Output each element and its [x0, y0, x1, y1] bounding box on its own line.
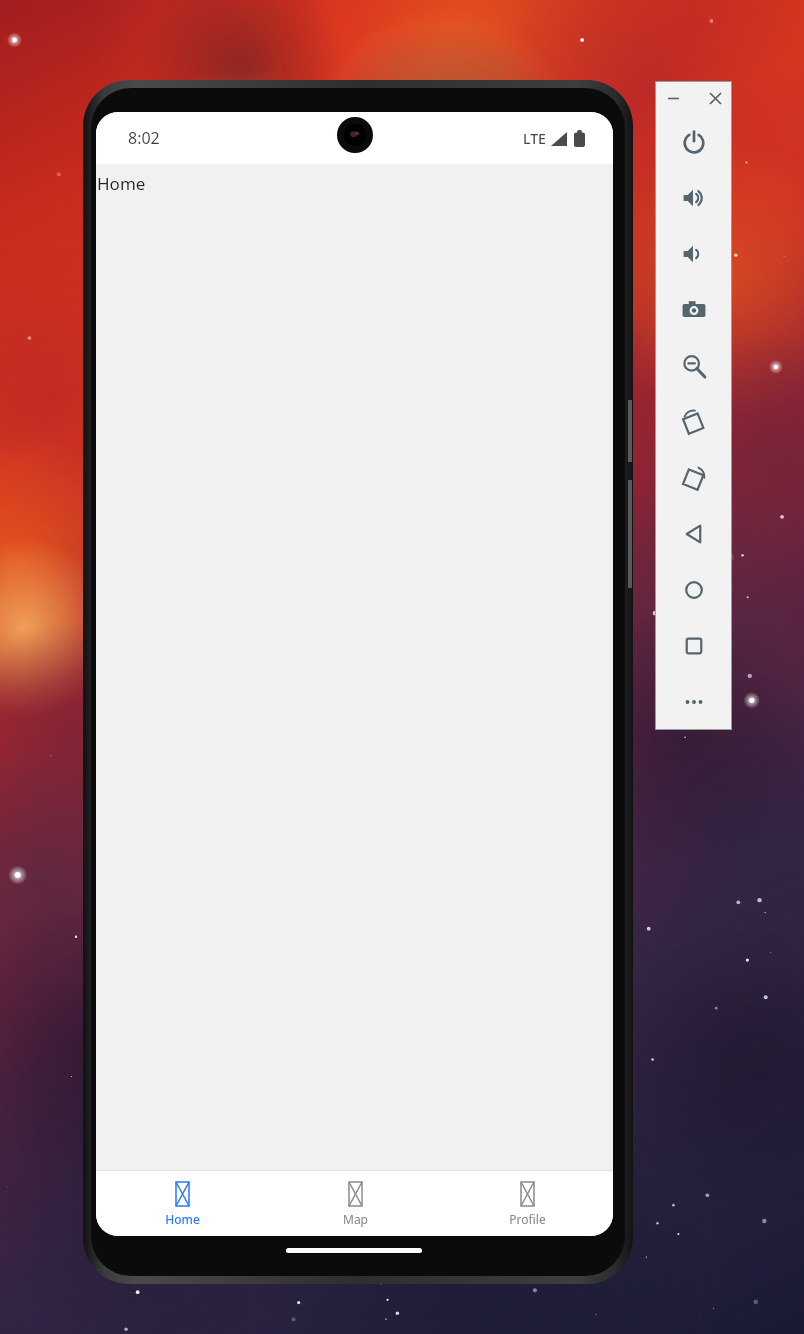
button[interactable]: More	[666, 674, 722, 729]
other: Profile	[521, 1182, 534, 1206]
button[interactable]: Rotate right	[666, 450, 722, 506]
button[interactable]: Profile	[441, 1171, 613, 1236]
button[interactable]: Zoom	[666, 338, 722, 394]
staticText: Home	[165, 1211, 200, 1227]
button[interactable]: Map	[269, 1171, 441, 1236]
button[interactable]: Rotate left	[666, 394, 722, 450]
button[interactable]: Minimize	[662, 87, 684, 109]
button[interactable]: Back	[666, 506, 722, 562]
staticText: LTE	[523, 129, 546, 148]
button[interactable]: Power	[666, 114, 722, 170]
other: Map	[349, 1182, 362, 1206]
button[interactable]: Home	[666, 562, 722, 618]
staticText: 8:02	[128, 127, 160, 149]
button[interactable]: Close	[704, 87, 726, 109]
button[interactable]: Volume up	[666, 170, 722, 226]
button[interactable]: Overview	[666, 618, 722, 674]
staticText: Home	[97, 172, 146, 195]
button[interactable]: Take screenshot	[666, 282, 722, 338]
other: Home	[176, 1182, 189, 1206]
staticText: Map	[343, 1211, 368, 1227]
staticText: Profile	[509, 1211, 546, 1227]
button[interactable]: Volume down	[666, 226, 722, 282]
button[interactable]: Home	[96, 1171, 269, 1236]
